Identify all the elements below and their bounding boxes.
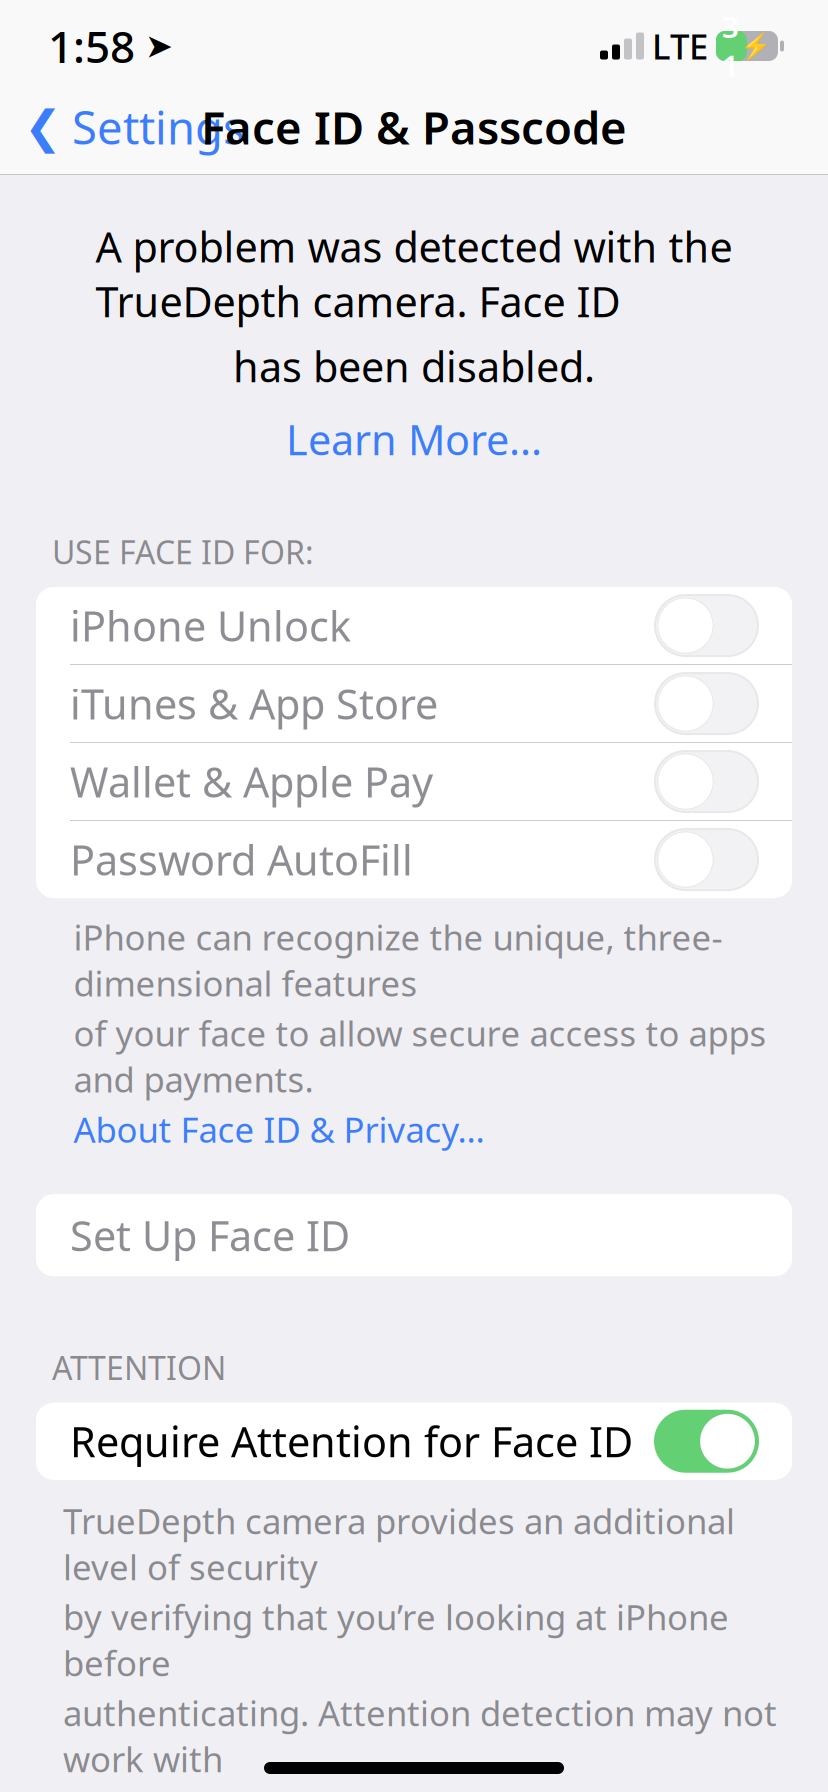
button[interactable]: Require Attention for Face ID xyxy=(36,1403,792,1480)
staticText: of your face to allow secure access to a… xyxy=(73,1010,766,1102)
staticText: by verifying that you’re looking at iPho… xyxy=(63,1594,729,1686)
staticText: LTE xyxy=(652,23,708,69)
staticText: has been disabled. xyxy=(233,339,595,394)
staticText: 31 xyxy=(722,7,739,85)
staticText: 1:58 xyxy=(48,17,135,75)
staticText: iPhone Unlock xyxy=(70,598,351,653)
button[interactable]: Set Up Face ID xyxy=(36,1194,792,1276)
button[interactable]: About Face ID & Privacy... xyxy=(73,1106,484,1152)
button[interactable]: Wallet & Apple Pay xyxy=(36,743,792,820)
button[interactable]: iPhone Unlock xyxy=(36,587,792,664)
button[interactable]: ❮ xyxy=(0,87,245,167)
button[interactable]: Learn More... xyxy=(286,412,542,467)
staticText: iPhone can recognize the unique, three-d… xyxy=(73,914,722,1006)
staticText: ❮ xyxy=(24,101,62,153)
staticText: iTunes & App Store xyxy=(70,676,438,731)
button[interactable]: iTunes & App Store xyxy=(36,665,792,742)
staticText: Face ID & Passcode xyxy=(201,97,627,157)
staticText: ➤ xyxy=(145,27,173,65)
staticText: About Face ID & Privacy... xyxy=(73,1106,484,1152)
button[interactable]: Password AutoFill xyxy=(36,821,792,898)
staticText: A problem was detected with the TrueDept… xyxy=(95,219,732,329)
staticText: Wallet & Apple Pay xyxy=(70,754,433,809)
staticText: Password AutoFill xyxy=(70,832,413,887)
staticText: Set Up Face ID xyxy=(70,1208,350,1263)
staticText: TrueDepth camera provides an additional … xyxy=(63,1498,735,1590)
staticText: Require Attention for Face ID xyxy=(70,1414,633,1469)
staticText: USE FACE ID FOR: xyxy=(52,531,314,573)
staticText: Learn More... xyxy=(286,412,542,467)
staticText: ATTENTION xyxy=(52,1346,226,1389)
staticText: Settings xyxy=(72,97,245,157)
staticText: ⚡ xyxy=(740,31,772,60)
staticText: authenticating. Attention detection may … xyxy=(63,1690,777,1782)
